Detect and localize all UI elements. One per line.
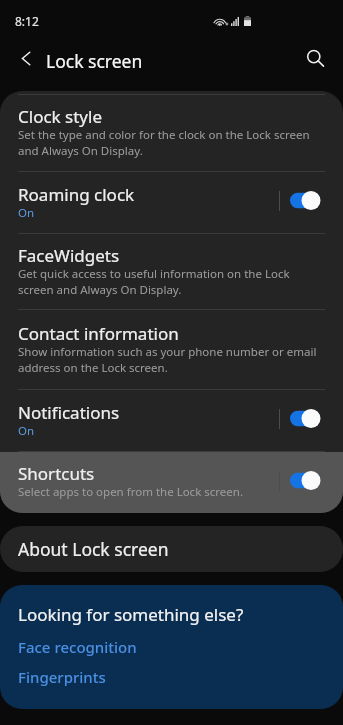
button[interactable]: Contact information bbox=[0, 310, 343, 389]
button[interactable]: Face recognition bbox=[18, 637, 137, 657]
button[interactable]: Shortcuts switch bbox=[290, 471, 320, 490]
button[interactable]: Notifications switch bbox=[290, 409, 320, 428]
staticText: Roaming clock bbox=[18, 183, 135, 206]
button[interactable]: Notifications bbox=[0, 390, 343, 451]
staticText: Shortcuts bbox=[18, 462, 95, 485]
staticText: FaceWidgets bbox=[18, 244, 120, 267]
staticText: About Lock screen bbox=[18, 537, 169, 561]
button[interactable]: Roaming clock bbox=[0, 172, 343, 233]
button[interactable]: Roaming clock switch bbox=[290, 191, 320, 210]
button[interactable]: Shortcuts bbox=[0, 452, 343, 513]
button[interactable]: Fingerprints bbox=[18, 667, 106, 687]
button[interactable]: Clock style bbox=[0, 95, 343, 171]
button[interactable]: FaceWidgets bbox=[0, 234, 343, 309]
staticText: Lock screen bbox=[46, 49, 143, 73]
staticText: Notifications bbox=[18, 401, 120, 424]
staticText: On bbox=[18, 423, 35, 439]
button[interactable]: Navigate up bbox=[0, 38, 46, 84]
staticText: Clock style bbox=[18, 105, 102, 128]
button[interactable]: About Lock screen bbox=[0, 526, 343, 572]
staticText: 8:12 bbox=[15, 13, 39, 29]
button[interactable]: Search bbox=[293, 41, 333, 81]
staticText: Show information such as your phone numb… bbox=[18, 344, 317, 375]
staticText: Looking for something else? bbox=[18, 603, 244, 626]
staticText: Get quick access to useful information o… bbox=[18, 266, 290, 297]
staticText: Select apps to open from the Lock screen… bbox=[18, 484, 243, 500]
staticText: On bbox=[18, 205, 35, 221]
staticText: Set the type and color for the clock on … bbox=[18, 127, 310, 158]
staticText: Contact information bbox=[18, 322, 179, 345]
